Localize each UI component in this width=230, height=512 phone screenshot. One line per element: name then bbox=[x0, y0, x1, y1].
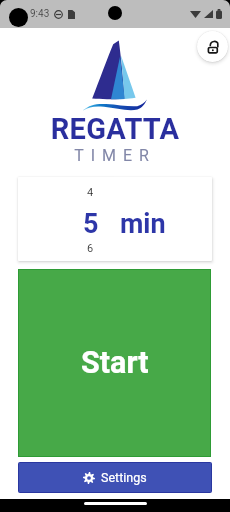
button[interactable]: 4 bbox=[18, 177, 212, 261]
staticText: min bbox=[120, 208, 166, 240]
staticText: REGATTA bbox=[0, 112, 230, 146]
staticText: 6 bbox=[87, 242, 94, 255]
staticText: 5 bbox=[83, 208, 99, 240]
button[interactable]: Settings bbox=[19, 463, 211, 492]
staticText: Settings bbox=[101, 470, 147, 485]
button[interactable]: Start bbox=[19, 270, 210, 456]
staticText: 4 bbox=[87, 186, 94, 199]
button[interactable]: Unlock screen bbox=[197, 31, 228, 62]
staticText: 9:43 bbox=[30, 8, 50, 20]
staticText: TIMER bbox=[0, 146, 230, 165]
staticText: Start bbox=[81, 345, 149, 381]
